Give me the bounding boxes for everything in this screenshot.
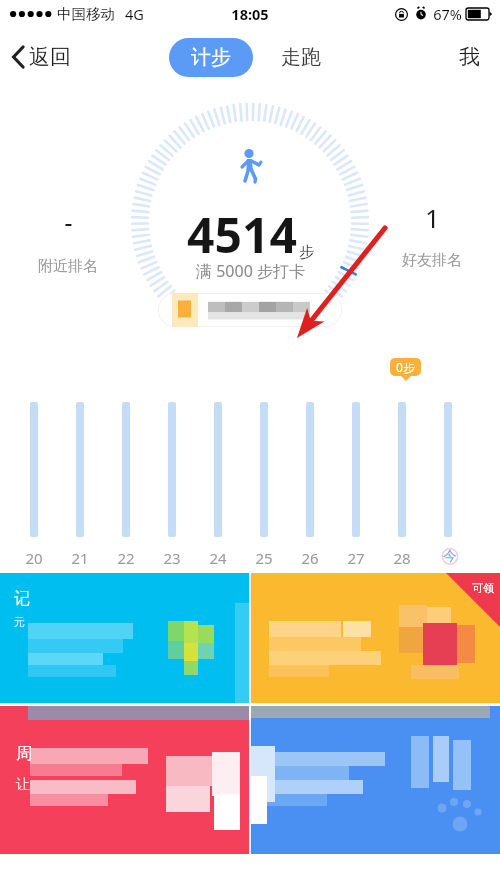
staticText: 22	[117, 548, 135, 565]
staticText: 记	[14, 589, 30, 609]
button[interactable]: 1	[386, 200, 478, 270]
staticText: 返回	[29, 44, 71, 70]
staticText: 0步	[396, 359, 415, 375]
staticText: 今	[443, 548, 457, 565]
staticText: 附近排名	[38, 257, 98, 276]
staticText: 67%	[433, 4, 462, 24]
staticText: 我	[459, 44, 480, 70]
staticText: 满 5000 步打卡	[196, 260, 305, 282]
button[interactable]: 我	[439, 34, 500, 80]
staticText: 中国移动	[57, 5, 115, 23]
staticText: 步	[299, 243, 314, 262]
staticText: 27	[347, 548, 365, 565]
button[interactable]: 今天	[436, 548, 464, 565]
staticText: 周	[16, 744, 32, 764]
button[interactable]: -	[22, 204, 114, 276]
staticText: 25	[255, 548, 273, 565]
button[interactable]: 返回	[0, 36, 83, 78]
staticText: 18:05	[231, 4, 269, 24]
staticText: 好友排名	[402, 251, 462, 270]
staticText: 走跑	[281, 45, 321, 70]
staticText: 26	[301, 548, 319, 565]
staticText: -	[64, 204, 73, 239]
staticText: 24	[209, 548, 227, 565]
staticText: 28	[393, 548, 411, 565]
staticText: 23	[163, 548, 181, 565]
staticText: 4G	[125, 4, 144, 24]
button[interactable]: 计步	[169, 38, 253, 77]
staticText: 4514	[187, 202, 297, 267]
staticText: 计步	[191, 45, 231, 70]
button[interactable]	[251, 706, 500, 854]
button[interactable]: 走跑	[271, 38, 331, 77]
staticText: 1	[425, 200, 440, 235]
staticText: 让	[16, 776, 30, 794]
button[interactable]	[158, 293, 342, 327]
staticText: 20	[25, 548, 43, 565]
button[interactable]: 可领	[251, 573, 500, 703]
staticText: 元	[14, 615, 25, 629]
staticText: 可领	[472, 581, 494, 595]
button[interactable]: 记	[0, 573, 249, 703]
staticText: 21	[71, 548, 89, 565]
button[interactable]: 周	[0, 706, 249, 854]
